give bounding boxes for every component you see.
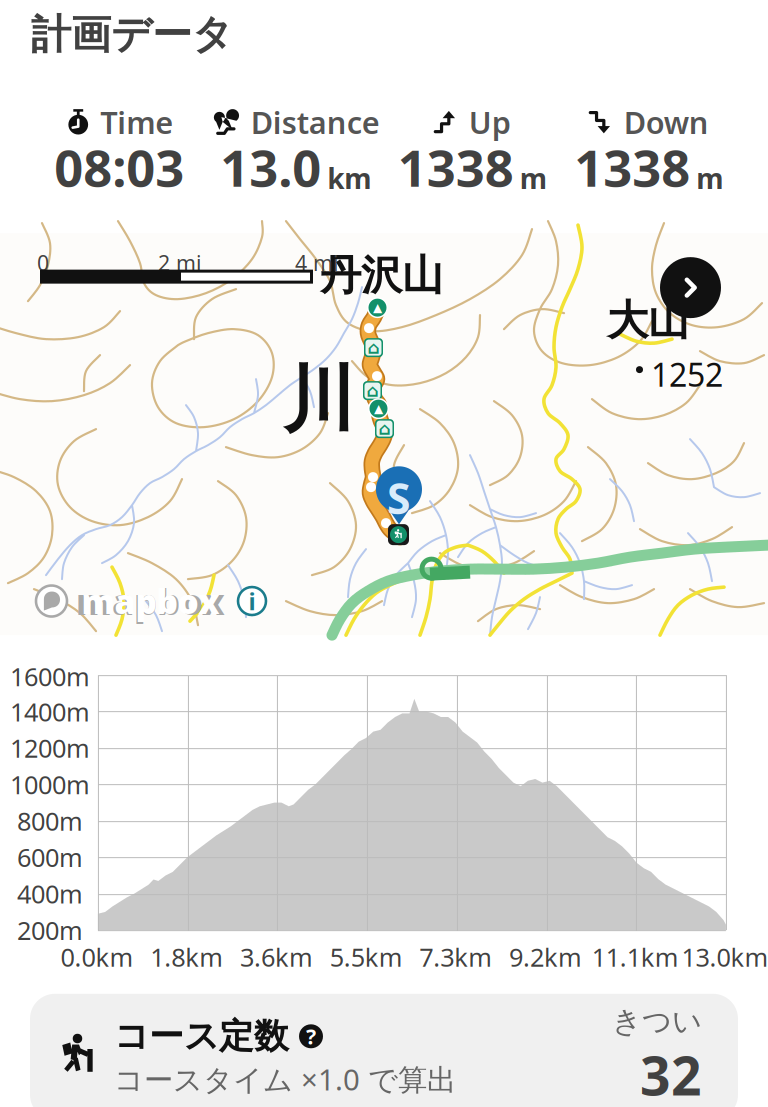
staticText: 丹沢山	[320, 250, 443, 301]
staticText: ⌂	[367, 338, 379, 357]
staticText: S	[387, 469, 411, 526]
staticText: i	[248, 585, 255, 617]
staticText: 9.2km	[509, 940, 582, 974]
staticText: 13.0	[220, 133, 321, 201]
staticText: 1338	[574, 133, 690, 201]
staticText: ▲	[374, 402, 383, 415]
staticText: 1600m	[10, 660, 90, 693]
staticText: 川	[283, 356, 355, 444]
staticText: ⌂	[366, 381, 378, 400]
staticText: Down	[624, 102, 709, 142]
staticText: 計画データ	[31, 10, 233, 59]
staticText: Distance	[251, 102, 380, 142]
staticText: 7.3km	[419, 940, 492, 974]
staticText: 32	[640, 1039, 702, 1107]
staticText: 5.5km	[330, 940, 403, 974]
staticText: 400m	[17, 877, 83, 910]
staticText: 4 mi	[295, 249, 339, 277]
staticText: 800m	[17, 804, 83, 838]
staticText: 13.0km	[681, 940, 768, 974]
staticText: km	[327, 160, 371, 197]
staticText: 1000m	[10, 768, 90, 801]
staticText: ?	[306, 1022, 316, 1050]
staticText: 11.1km	[592, 940, 679, 974]
staticText: ⌂	[378, 419, 390, 438]
staticText: Up	[469, 102, 511, 142]
button[interactable]: Open map	[660, 257, 721, 318]
staticText: mapbox	[76, 577, 225, 625]
staticText: 1252	[651, 353, 723, 396]
staticText: 3.6km	[240, 940, 313, 974]
staticText: 200m	[17, 913, 83, 947]
staticText: m	[520, 160, 547, 197]
staticText: Time	[100, 102, 173, 142]
staticText: 1.8km	[150, 940, 223, 974]
staticText: きつい	[612, 1003, 702, 1039]
staticText: コースタイム ×1.0 で算出	[114, 1060, 456, 1099]
staticText: 600m	[17, 840, 83, 874]
staticText: 08:03	[54, 133, 184, 201]
staticText: 1338	[398, 133, 514, 201]
button[interactable]: コース定数	[30, 994, 738, 1107]
staticText: 0	[37, 249, 49, 277]
staticText: 1400m	[10, 695, 90, 728]
staticText: コース定数	[114, 1015, 289, 1058]
staticText: 2 mi	[158, 249, 202, 277]
staticText: 1200m	[10, 731, 90, 765]
staticText: mapbox	[81, 579, 219, 623]
staticText: 0.0km	[60, 940, 133, 974]
staticText: m	[696, 160, 723, 197]
staticText: ▲	[373, 301, 382, 314]
staticText: 大山	[607, 295, 689, 346]
